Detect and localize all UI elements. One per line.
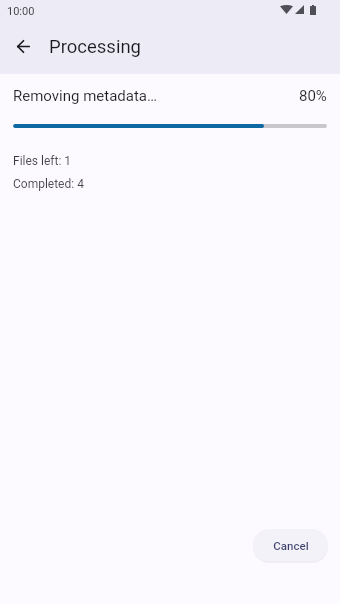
staticText: Processing	[49, 36, 142, 58]
button[interactable]: Cancel	[253, 529, 328, 561]
staticText: Cancel	[273, 539, 309, 552]
staticText: Removing metadata…	[13, 87, 158, 105]
staticText: 80%	[299, 87, 327, 105]
staticText: 10:00	[7, 5, 35, 18]
staticText: Completed: 4	[13, 177, 84, 191]
button[interactable]: Back	[0, 23, 46, 69]
staticText: Files left: 1	[13, 154, 72, 168]
